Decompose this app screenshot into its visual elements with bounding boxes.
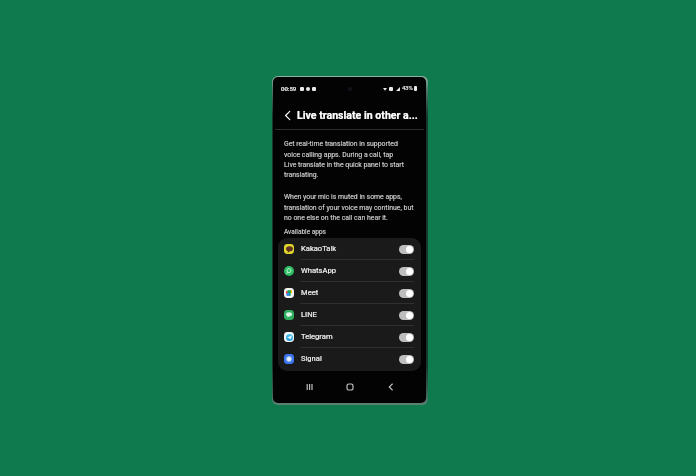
staticText: Signal xyxy=(301,354,322,363)
button[interactable]: KakaoTalk xyxy=(278,238,421,260)
staticText: 00:59 xyxy=(281,85,297,92)
button[interactable]: WhatsApp xyxy=(278,260,421,282)
button[interactable]: Toggle xyxy=(399,311,414,320)
button[interactable]: Back xyxy=(384,380,398,394)
button[interactable]: Signal xyxy=(278,348,421,370)
staticText: WhatsApp xyxy=(301,266,336,275)
staticText: Meet xyxy=(301,288,319,297)
button[interactable]: LINE xyxy=(278,304,421,326)
button[interactable]: Telegram xyxy=(278,326,421,348)
button[interactable]: Toggle xyxy=(399,289,414,298)
staticText: KakaoTalk xyxy=(301,244,337,253)
staticText: Telegram xyxy=(301,332,333,341)
button[interactable]: Meet xyxy=(278,282,421,304)
staticText: Live translate in other a... xyxy=(297,109,418,121)
button[interactable]: Toggle xyxy=(399,355,414,364)
button[interactable]: Navigate up xyxy=(279,107,296,124)
button[interactable]: Recent apps xyxy=(302,380,316,394)
staticText: LINE xyxy=(301,310,317,319)
button[interactable]: Toggle xyxy=(399,333,414,342)
staticText: Get real-time translation in supported v… xyxy=(284,140,405,179)
staticText: When your mic is muted in some apps, tra… xyxy=(284,193,414,222)
button[interactable]: Toggle xyxy=(399,267,414,276)
button[interactable]: Toggle xyxy=(399,245,414,254)
staticText: 43% xyxy=(402,85,413,92)
button[interactable]: Home xyxy=(343,380,357,394)
staticText: Available apps xyxy=(284,228,326,236)
